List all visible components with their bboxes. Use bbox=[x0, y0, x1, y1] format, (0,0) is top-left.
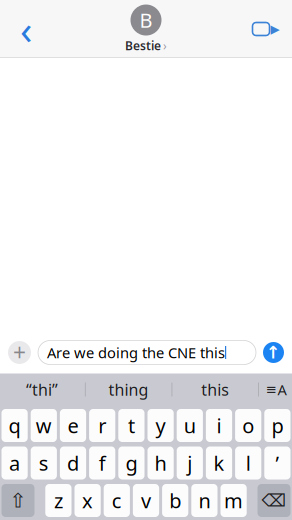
button[interactable]: b bbox=[162, 484, 188, 517]
staticText: Bestie bbox=[125, 37, 161, 53]
button[interactable]: Send bbox=[263, 342, 284, 363]
staticText: n bbox=[198, 487, 210, 514]
button[interactable]: p bbox=[264, 409, 290, 442]
staticText: z bbox=[54, 487, 63, 514]
button[interactable]: Formatting bbox=[259, 373, 292, 405]
staticText: o bbox=[242, 412, 254, 439]
button[interactable]: Delete bbox=[257, 484, 290, 517]
staticText: m bbox=[224, 487, 243, 514]
staticText: q bbox=[9, 412, 21, 439]
button[interactable]: n bbox=[191, 484, 217, 517]
staticText: a bbox=[9, 450, 20, 476]
staticText: w bbox=[36, 412, 52, 439]
staticText: u bbox=[184, 412, 196, 439]
button[interactable]: v bbox=[133, 484, 159, 517]
staticText: l bbox=[246, 450, 251, 476]
staticText: “thi” bbox=[26, 379, 58, 400]
button[interactable]: Add attachment bbox=[8, 337, 31, 367]
staticText: p bbox=[271, 412, 283, 439]
staticText: e bbox=[67, 412, 78, 439]
staticText: t bbox=[128, 412, 135, 439]
staticText: g bbox=[125, 450, 137, 476]
staticText: ▶ bbox=[270, 22, 279, 36]
button[interactable]: o bbox=[235, 409, 261, 442]
button[interactable]: g bbox=[118, 446, 144, 479]
staticText: thing bbox=[109, 379, 149, 400]
button[interactable]: r bbox=[89, 409, 115, 442]
button[interactable]: Back bbox=[6, 9, 46, 49]
button[interactable]: ’ bbox=[264, 446, 290, 479]
staticText: ‹ bbox=[20, 2, 32, 55]
button[interactable]: w bbox=[31, 409, 57, 442]
staticText: › bbox=[163, 37, 167, 53]
button[interactable]: a bbox=[1, 446, 28, 479]
button[interactable]: t bbox=[118, 409, 144, 442]
staticText: ⌫ bbox=[261, 491, 286, 510]
button[interactable]: e bbox=[60, 409, 86, 442]
button[interactable]: x bbox=[74, 484, 101, 517]
staticText: f bbox=[99, 450, 106, 476]
staticText: + bbox=[13, 337, 26, 367]
button[interactable]: j bbox=[177, 446, 203, 479]
staticText: A bbox=[277, 380, 286, 399]
button[interactable]: m bbox=[220, 484, 247, 517]
staticText: B bbox=[139, 7, 152, 33]
staticText: j bbox=[187, 450, 192, 476]
staticText: i bbox=[216, 412, 221, 439]
button[interactable]: d bbox=[60, 446, 86, 479]
button[interactable]: “thi” bbox=[0, 373, 85, 405]
button[interactable]: s bbox=[31, 446, 57, 479]
staticText: b bbox=[169, 487, 181, 514]
button[interactable]: FaceTime bbox=[246, 9, 286, 49]
button[interactable]: k bbox=[206, 446, 232, 479]
staticText: ⇧ bbox=[9, 489, 26, 512]
staticText: x bbox=[82, 487, 93, 514]
staticText: ’ bbox=[275, 450, 279, 476]
staticText: v bbox=[141, 487, 151, 514]
button[interactable]: z bbox=[45, 484, 71, 517]
staticText: s bbox=[39, 450, 49, 476]
staticText: h bbox=[155, 450, 167, 476]
button[interactable]: u bbox=[177, 409, 203, 442]
button[interactable]: i bbox=[206, 409, 232, 442]
staticText: this bbox=[201, 379, 229, 400]
button[interactable]: l bbox=[235, 446, 261, 479]
button[interactable]: c bbox=[104, 484, 130, 517]
button[interactable]: Shift bbox=[1, 484, 34, 517]
staticText: r bbox=[98, 412, 106, 439]
staticText: ≡ bbox=[265, 382, 276, 397]
button[interactable]: f bbox=[89, 446, 115, 479]
staticText: y bbox=[156, 412, 166, 439]
staticText: ↑ bbox=[266, 343, 281, 362]
button[interactable]: thing bbox=[86, 373, 172, 405]
button[interactable]: this bbox=[172, 373, 258, 405]
button[interactable]: q bbox=[1, 409, 28, 442]
staticText: k bbox=[213, 450, 224, 476]
button[interactable]: B bbox=[125, 4, 167, 53]
button[interactable]: y bbox=[147, 409, 174, 442]
staticText: c bbox=[112, 487, 122, 514]
staticText: Are we doing the CNE this bbox=[47, 343, 225, 362]
button[interactable]: h bbox=[147, 446, 174, 479]
staticText: d bbox=[67, 450, 79, 476]
